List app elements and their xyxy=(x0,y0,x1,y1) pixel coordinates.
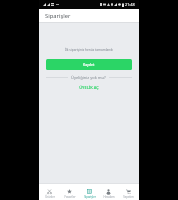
staticText: Siparişler xyxy=(84,195,96,199)
staticText: 21:48 xyxy=(125,2,135,7)
staticText: Favoriler xyxy=(64,195,76,199)
staticText: Kaydet xyxy=(83,62,95,67)
staticText: Hesabım xyxy=(103,195,115,199)
staticText: Sepetim xyxy=(123,195,134,199)
staticText: Ürünler xyxy=(45,195,55,199)
staticText: Üyeliğiniz yok mu? xyxy=(71,75,106,80)
staticText: Siparişler xyxy=(45,12,71,20)
button[interactable]: Kaydet xyxy=(46,59,132,70)
staticText: İlk siparişiniz henüz tamamlandı xyxy=(39,48,139,52)
button[interactable]: Ürünler xyxy=(40,183,59,200)
button[interactable]: Hesabım xyxy=(99,183,118,200)
button[interactable]: ÜYELİK AÇ xyxy=(39,85,139,90)
button[interactable]: Siparişler xyxy=(80,183,99,200)
button[interactable]: Sepetim xyxy=(119,183,138,200)
button[interactable]: Favoriler xyxy=(60,183,79,200)
